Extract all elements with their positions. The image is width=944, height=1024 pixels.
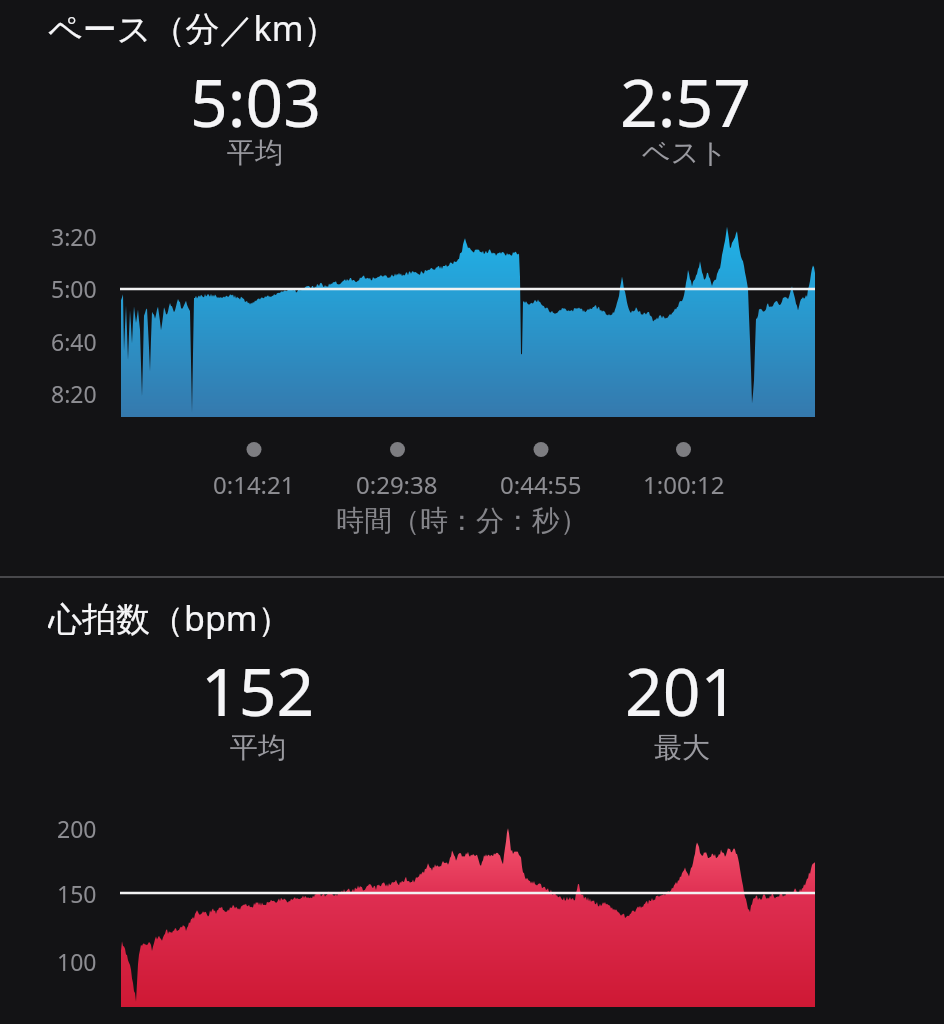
staticText: 5:03	[190, 56, 321, 146]
staticText: 200	[57, 813, 97, 844]
staticText: 最大	[654, 730, 710, 765]
staticText: ベスト	[642, 135, 728, 170]
staticText: 0:29:38	[356, 468, 438, 501]
staticText: 平均	[227, 135, 283, 170]
staticText: 心拍数（bpm）	[48, 595, 292, 639]
staticText: 0:44:55	[500, 468, 582, 501]
staticText: 152	[201, 645, 315, 735]
staticText: ペース（分／km）	[48, 5, 338, 49]
button[interactable]: 心拍数（bpm）	[48, 595, 468, 639]
staticText: 平均	[230, 730, 286, 765]
staticText: 3:20	[51, 221, 97, 252]
staticText: 1:00:12	[643, 468, 725, 501]
staticText: 5:00	[51, 273, 97, 304]
staticText: 時間（時：分：秒）	[336, 503, 588, 538]
staticText: 150	[57, 878, 97, 909]
staticText: 6:40	[51, 326, 97, 357]
button[interactable]: ペース（分／km）	[48, 5, 468, 49]
staticText: 8:20	[51, 378, 97, 409]
staticText: 2:57	[620, 56, 751, 146]
staticText: 0:14:21	[213, 468, 295, 501]
staticText: 201	[625, 645, 739, 735]
staticText: 100	[57, 946, 97, 977]
